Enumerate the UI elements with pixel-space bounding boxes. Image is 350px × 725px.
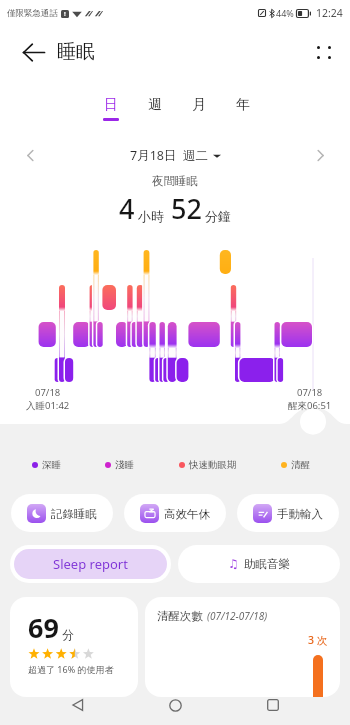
button[interactable]: Sleep report bbox=[10, 545, 171, 583]
staticText: 深睡 bbox=[42, 459, 61, 471]
button[interactable]: 日 bbox=[89, 96, 133, 130]
staticText: ♫ bbox=[228, 557, 239, 571]
button[interactable]: Next day bbox=[308, 143, 332, 167]
staticText: 醒來06:51 bbox=[288, 399, 332, 412]
staticText: 月 bbox=[192, 96, 206, 114]
button[interactable]: 手動輸入 bbox=[237, 494, 339, 532]
button[interactable]: 月 bbox=[177, 96, 221, 130]
staticText: 助眠音樂 bbox=[244, 557, 290, 571]
button[interactable]: Home bbox=[155, 685, 195, 725]
staticText: 分鐘 bbox=[205, 208, 231, 224]
button[interactable]: Recents bbox=[253, 685, 293, 725]
staticText: 小時 bbox=[138, 208, 164, 224]
staticText: 07/18 bbox=[297, 386, 323, 399]
button[interactable]: 週 bbox=[133, 96, 177, 130]
staticText: 69 bbox=[28, 609, 59, 646]
button[interactable]: 記錄睡眠 bbox=[11, 494, 113, 532]
staticText: 快速動眼期 bbox=[189, 459, 237, 471]
staticText: 高效午休 bbox=[164, 507, 210, 521]
button[interactable]: 69 bbox=[10, 597, 138, 697]
button[interactable]: ♫ bbox=[178, 545, 340, 583]
button[interactable]: 7月18日 bbox=[130, 147, 221, 164]
staticText: 入睡01:42 bbox=[26, 399, 70, 412]
staticText: 手動輸入 bbox=[277, 507, 323, 521]
staticText: 日 bbox=[104, 96, 118, 114]
staticText: 12:24 bbox=[316, 6, 343, 20]
staticText: 週 bbox=[148, 96, 162, 114]
staticText: 清醒 bbox=[291, 459, 310, 471]
staticText: 淺睡 bbox=[115, 459, 134, 471]
button[interactable]: 清醒次數 bbox=[145, 597, 340, 697]
staticText: 睡眠 bbox=[57, 40, 95, 64]
staticText: 7月18日 bbox=[130, 147, 177, 164]
button[interactable]: 高效午休 bbox=[124, 494, 226, 532]
staticText: 44% bbox=[276, 7, 294, 19]
button[interactable]: 年 bbox=[221, 96, 265, 130]
staticText: 4 bbox=[119, 190, 135, 227]
staticText: 52 bbox=[171, 190, 202, 227]
staticText: Sleep report bbox=[53, 555, 128, 573]
staticText: (07/12-07/18) bbox=[207, 609, 268, 623]
staticText: 夜間睡眠 bbox=[152, 174, 198, 188]
staticText: 3 次 bbox=[308, 633, 328, 647]
staticText: 僅限緊急通話 bbox=[7, 8, 58, 19]
button[interactable]: Back bbox=[20, 39, 46, 65]
staticText: 年 bbox=[236, 96, 250, 114]
button[interactable]: Previous day bbox=[18, 143, 42, 167]
button[interactable]: Back bbox=[58, 685, 98, 725]
staticText: 07/18 bbox=[35, 386, 61, 399]
staticText: ! bbox=[64, 10, 66, 18]
staticText: 分 bbox=[62, 627, 74, 642]
staticText: 超過了 16% 的使用者 bbox=[28, 663, 114, 675]
button[interactable]: More options bbox=[310, 38, 338, 66]
staticText: 週二 bbox=[183, 148, 208, 164]
staticText: 清醒次數 bbox=[157, 609, 203, 623]
staticText: 記錄睡眠 bbox=[51, 507, 97, 521]
